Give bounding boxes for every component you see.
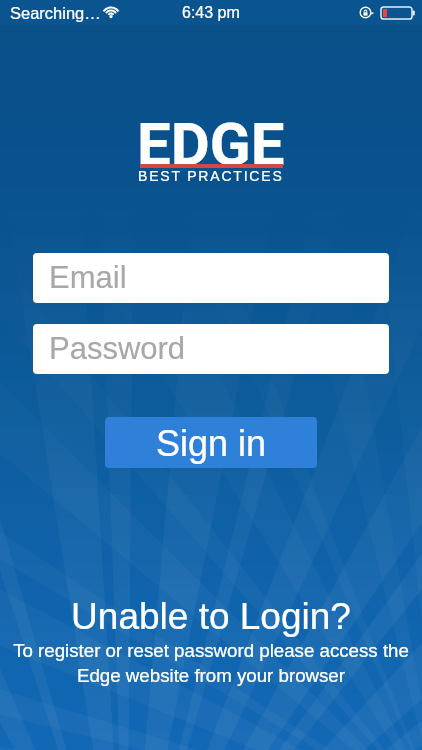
staticText: Searching… — [10, 4, 101, 22]
staticText: Email — [49, 260, 127, 295]
staticText: EDGE — [137, 109, 285, 179]
other: Battery — [381, 7, 415, 19]
button[interactable]: Password — [33, 324, 389, 374]
staticText: BEST PRACTICES — [138, 168, 284, 184]
staticText: Sign in — [156, 423, 267, 463]
staticText: 6:43 pm — [182, 4, 240, 22]
staticText: Password — [49, 331, 186, 366]
other: Rotation lock — [359, 6, 372, 19]
staticText: To register or reset password please acc… — [0, 640, 422, 686]
button[interactable]: Sign in — [105, 417, 317, 468]
button[interactable]: Email — [33, 253, 389, 303]
staticText: Unable to Login? — [0, 596, 422, 637]
